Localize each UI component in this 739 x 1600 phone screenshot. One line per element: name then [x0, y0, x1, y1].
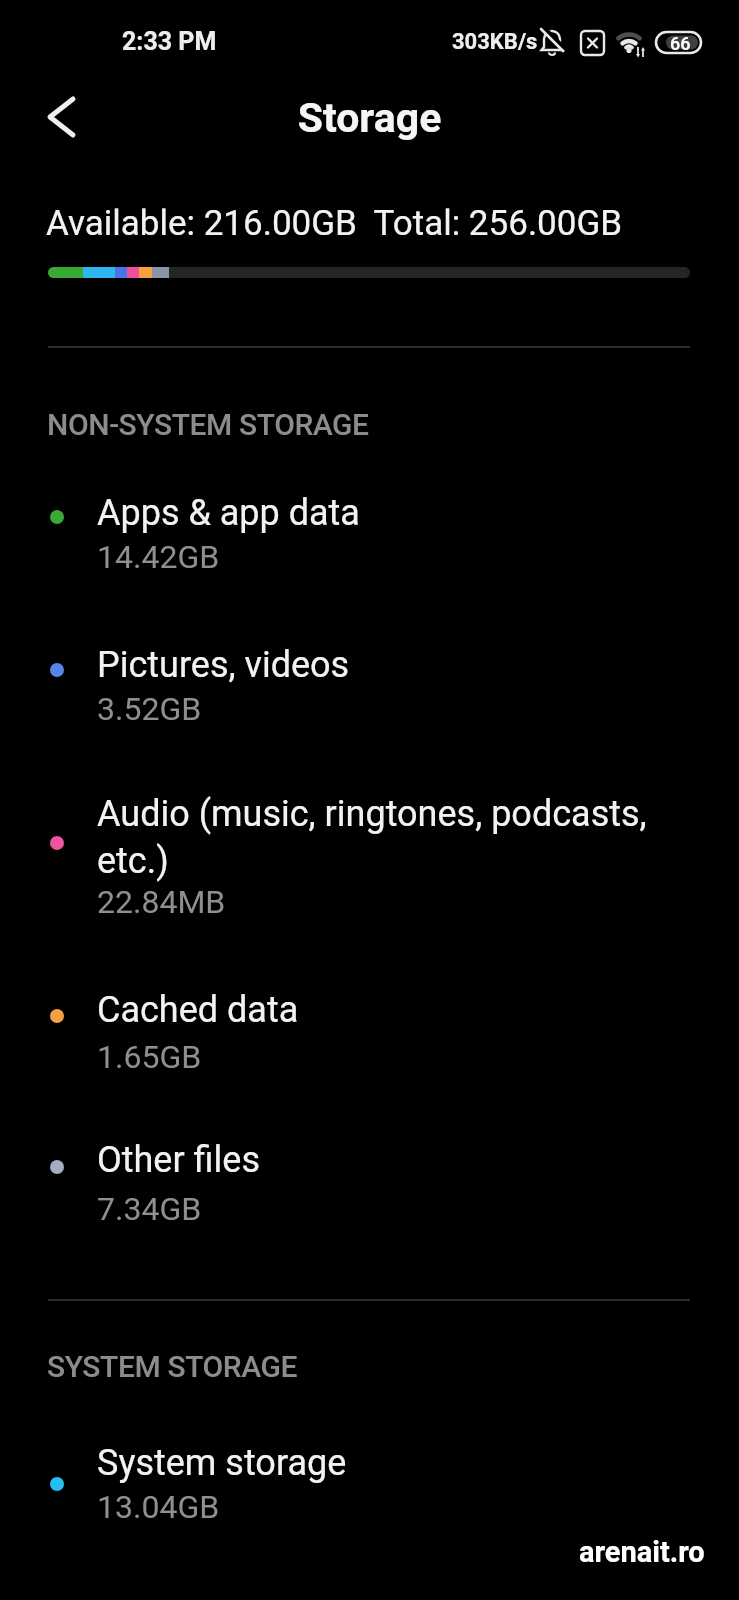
staticText: SYSTEM STORAGE [47, 1349, 298, 1384]
button[interactable]: Audio (music, ringtones, podcasts, [0, 779, 739, 937]
staticText: 66 [670, 33, 691, 54]
staticText: Storage [0, 94, 739, 142]
staticText: etc.) [97, 840, 169, 882]
button[interactable]: Apps & app data [0, 478, 739, 590]
button[interactable] [30, 90, 86, 146]
button[interactable]: Pictures, videos [0, 630, 739, 742]
staticText: 14.42GB [97, 538, 220, 576]
staticText: 3.52GB [97, 690, 202, 728]
staticText: 2:33 PM [122, 27, 217, 56]
staticText: 22.84MB [97, 883, 226, 921]
staticText: 7.34GB [97, 1190, 202, 1228]
button[interactable]: Cached data [0, 975, 739, 1087]
button[interactable]: System storage [0, 1428, 739, 1540]
staticText: Apps & app data [97, 492, 360, 534]
staticText: Pictures, videos [97, 644, 350, 686]
staticText: System storage [97, 1442, 347, 1484]
staticText: Available: 216.00GB Total: 256.00GB [46, 203, 623, 244]
staticText: NON-SYSTEM STORAGE [47, 407, 369, 442]
staticText: Cached data [97, 989, 299, 1031]
staticText: 303KB/s [452, 29, 538, 55]
staticText: 13.04GB [97, 1488, 220, 1526]
staticText: Audio (music, ringtones, podcasts, [97, 793, 647, 835]
button[interactable]: Other files [0, 1127, 739, 1239]
staticText: 1.65GB [97, 1038, 202, 1076]
staticText: Other files [97, 1139, 260, 1181]
staticText: arenait.ro [579, 1535, 705, 1569]
